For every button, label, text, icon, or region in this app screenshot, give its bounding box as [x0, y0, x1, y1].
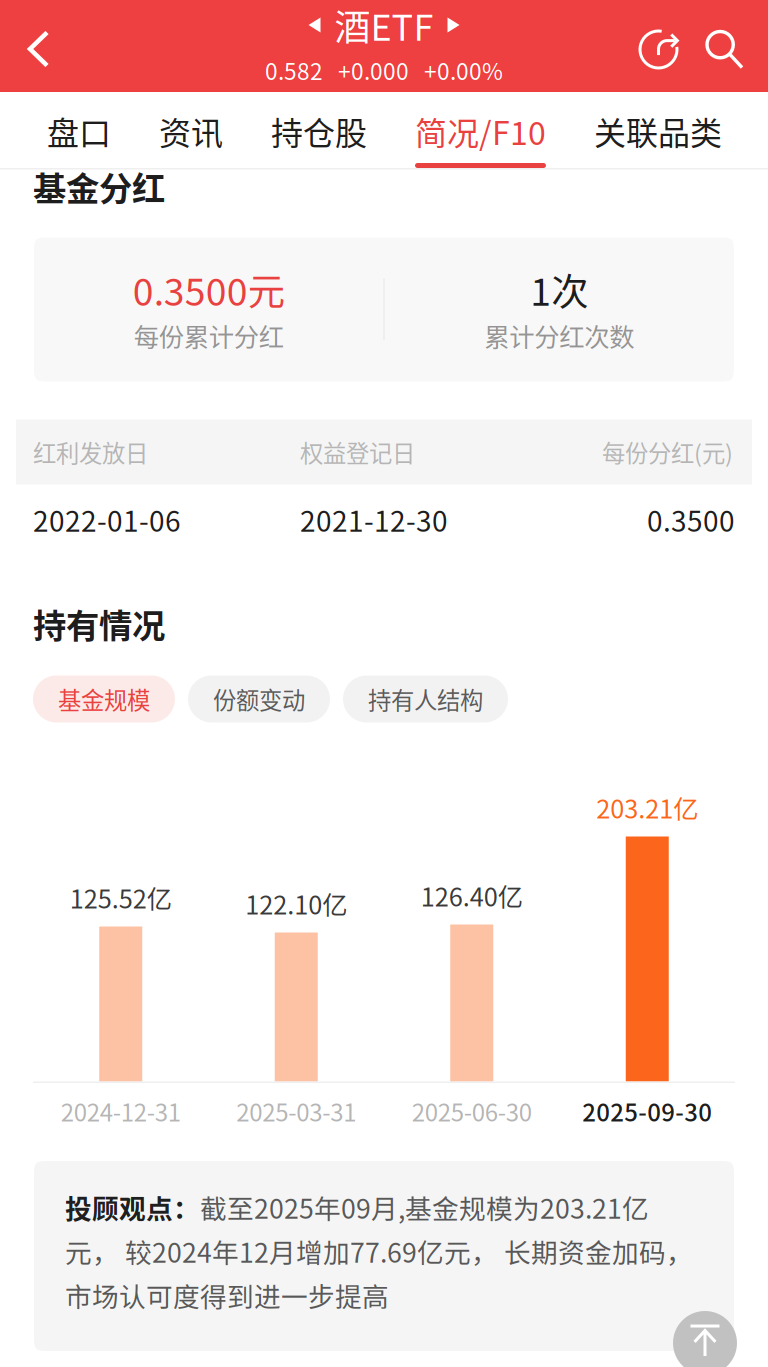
staticText: 203.21亿: [596, 789, 698, 826]
staticText: 关联品类: [594, 108, 722, 154]
staticText: 2025-03-31: [236, 1094, 356, 1128]
staticText: 126.40亿: [421, 877, 523, 914]
staticText: 截至2025年09月,基金规模为203.21亿: [200, 1188, 649, 1226]
staticText: 持仓股: [271, 108, 367, 154]
staticText: 2021-12-30: [300, 499, 448, 540]
staticText: 权益登记日: [300, 435, 415, 469]
staticText: 投顾观点：: [65, 1188, 200, 1226]
staticText: 资讯: [159, 108, 223, 154]
staticText: 累计分红次数: [484, 317, 634, 354]
staticText: 元， 较2024年12月增加77.69亿元， 长期资金加码，: [65, 1232, 693, 1270]
staticText: 125.52亿: [70, 879, 172, 916]
staticText: 1次: [530, 262, 588, 317]
staticText: 盘口: [47, 108, 111, 154]
staticText: 每份分红(元): [602, 435, 733, 469]
staticText: 红利发放日: [33, 435, 148, 469]
staticText: 份额变动: [213, 682, 305, 716]
button[interactable]: 盘口: [47, 92, 111, 168]
button[interactable]: 持有人结构: [343, 675, 508, 722]
button[interactable]: 关联品类: [594, 92, 722, 168]
staticText: 0.3500: [647, 499, 735, 540]
staticText: 酒ETF: [334, 0, 433, 51]
staticText: 2024-12-31: [61, 1094, 181, 1128]
button[interactable]: 持仓股: [271, 92, 367, 168]
staticText: 简况/F10: [415, 108, 546, 154]
button[interactable]: 基金规模: [33, 675, 175, 722]
staticText: 2025-09-30: [582, 1094, 712, 1128]
staticText: 2025-06-30: [412, 1094, 532, 1128]
button[interactable]: Back: [0, 0, 73, 92]
staticText: 市场认可度得到进一步提高: [65, 1276, 389, 1314]
button[interactable]: Refresh: [627, 0, 687, 92]
staticText: 0.582 +0.000 +0.00%: [265, 54, 503, 86]
button[interactable]: 简况/F10: [415, 92, 546, 168]
staticText: 2022-01-06: [33, 499, 181, 540]
button[interactable]: 资讯: [159, 92, 223, 168]
staticText: 每份累计分红: [134, 317, 284, 354]
staticText: 基金分红: [33, 162, 165, 211]
button[interactable]: Search: [687, 0, 768, 92]
button[interactable]: Scroll to top: [673, 1311, 737, 1367]
button[interactable]: 份额变动: [188, 675, 330, 722]
staticText: 持有人结构: [368, 682, 483, 716]
staticText: 持有情况: [33, 599, 165, 648]
staticText: 基金规模: [58, 682, 150, 716]
staticText: 122.10亿: [245, 885, 347, 922]
staticText: 0.3500元: [133, 262, 285, 317]
